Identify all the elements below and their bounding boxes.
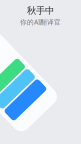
staticText: 你的AI翻译官 (20, 17, 61, 26)
staticText: 秋手中 (27, 5, 54, 16)
